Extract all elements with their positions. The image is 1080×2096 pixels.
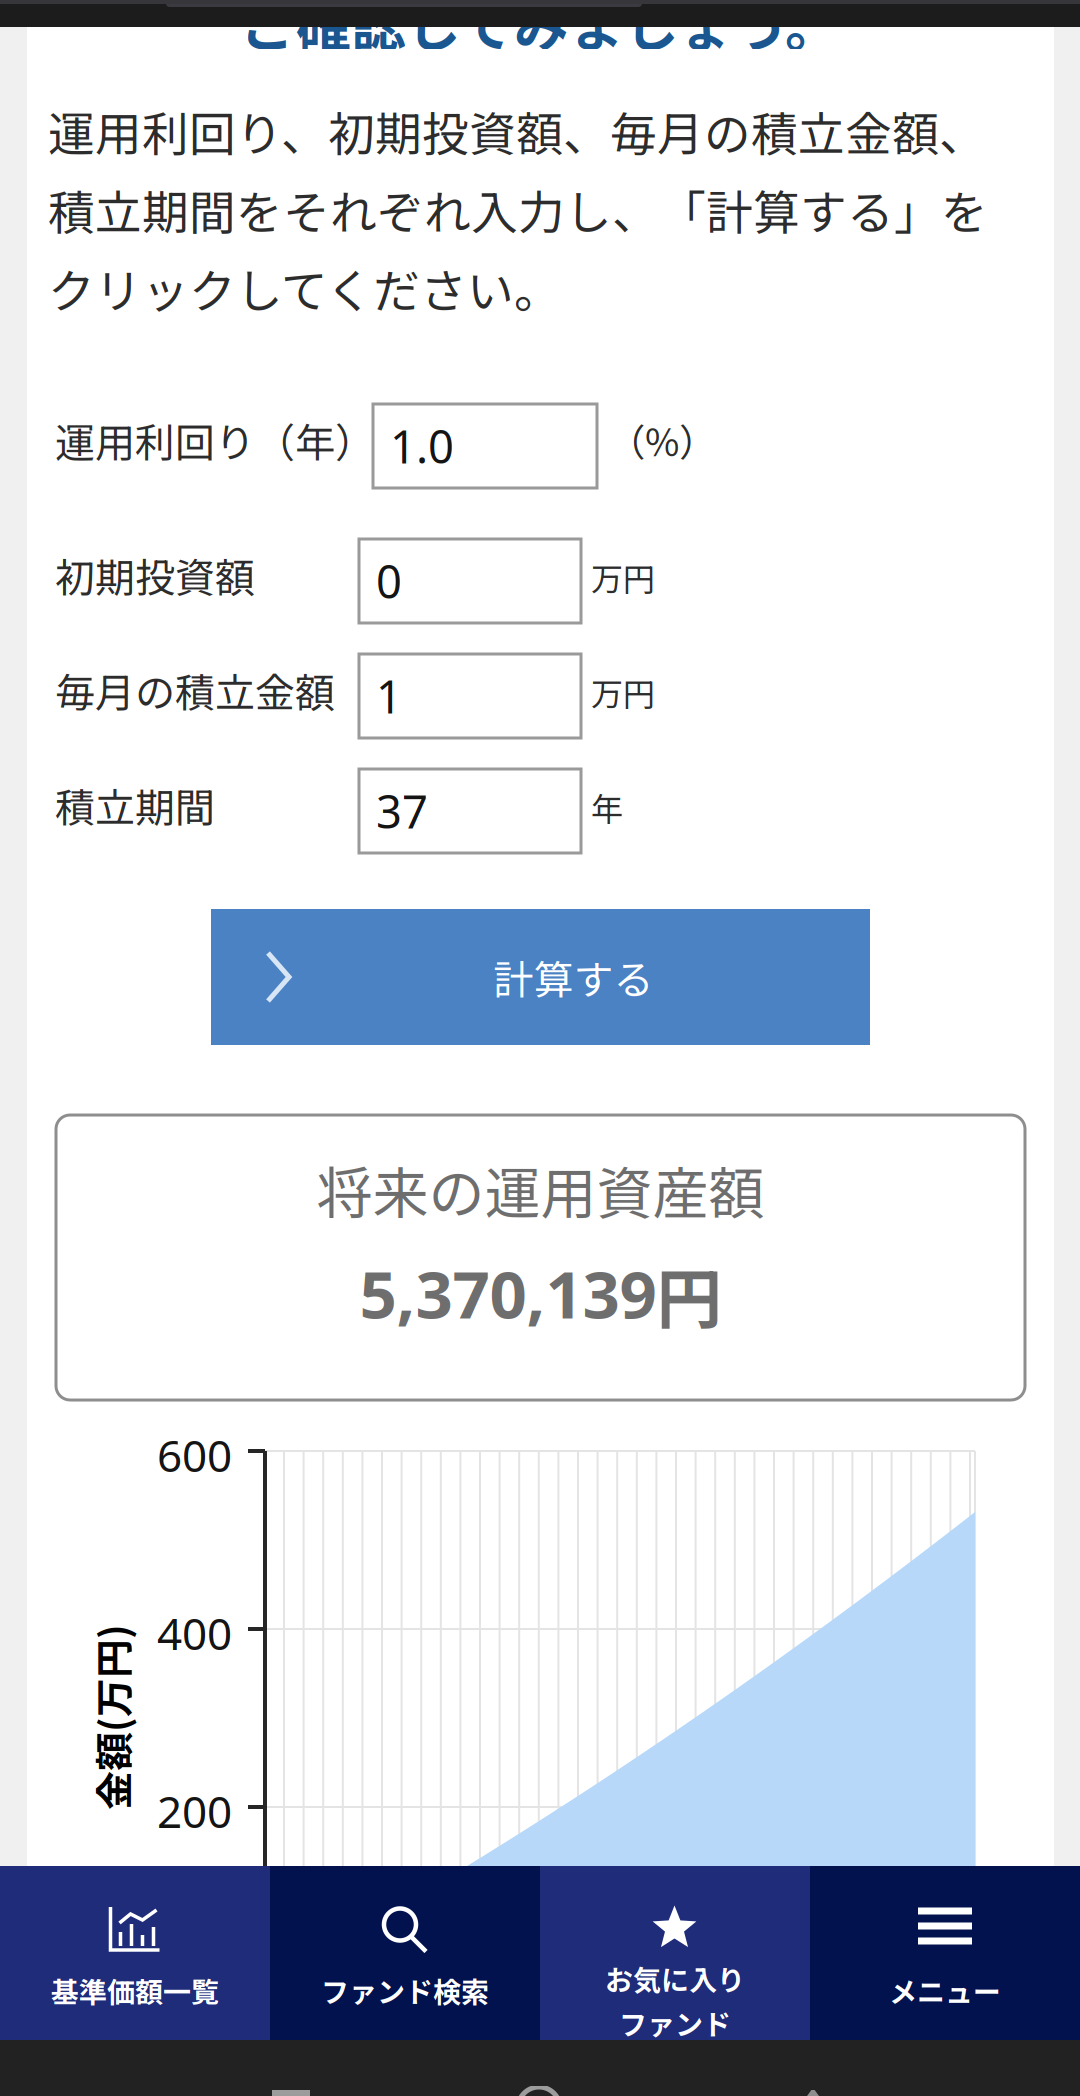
staticText: 金額(万円) [19, 1689, 205, 1745]
staticText: 0 [376, 550, 402, 612]
staticText: 計算する [493, 948, 653, 1006]
button[interactable]: 1.0 [373, 404, 597, 488]
staticText: 600 [157, 1425, 232, 1485]
button[interactable]: 0 [359, 539, 581, 623]
staticText: お気に入り [605, 1958, 745, 1998]
staticText: 400 [157, 1603, 232, 1663]
staticText: 積立期間 [55, 776, 215, 834]
staticText: 年 [591, 784, 623, 830]
button[interactable]: 基準価額一覧 [0, 1866, 270, 2040]
staticText: ファンド [619, 2002, 731, 2043]
button[interactable]: 計算する [211, 909, 870, 1045]
button[interactable]: ファンド検索 [270, 1866, 540, 2040]
staticText: 基準価額一覧 [51, 1970, 219, 2010]
button[interactable]: 1 [359, 654, 581, 738]
staticText: メニュー [889, 1970, 1001, 2010]
staticText: 初期投資額 [55, 546, 255, 604]
button[interactable]: お気に入り [540, 1866, 810, 2040]
staticText: 運用利回り、初期投資額、毎月の積立金額、積立期間をそれぞれ入力し、「計算する」を… [48, 97, 988, 322]
staticText: 1 [376, 665, 402, 727]
staticText: ファンド検索 [321, 1970, 489, 2010]
staticText: 5,370,139円 [359, 1247, 721, 1342]
staticText: ご確認してみましょう。 [241, 0, 840, 63]
staticText: 運用利回り（年） [55, 411, 375, 469]
staticText: 1.0 [390, 415, 454, 477]
staticText: 万円 [591, 669, 655, 715]
staticText: 将来の運用資産額 [316, 1149, 764, 1230]
staticText: 毎月の積立金額 [55, 661, 335, 719]
button[interactable]: 37 [359, 769, 581, 853]
button[interactable]: メニュー [810, 1866, 1080, 2040]
staticText: 万円 [591, 554, 655, 600]
staticText: 200 [157, 1781, 232, 1841]
staticText: （%） [608, 413, 716, 467]
staticText: 37 [376, 780, 428, 842]
